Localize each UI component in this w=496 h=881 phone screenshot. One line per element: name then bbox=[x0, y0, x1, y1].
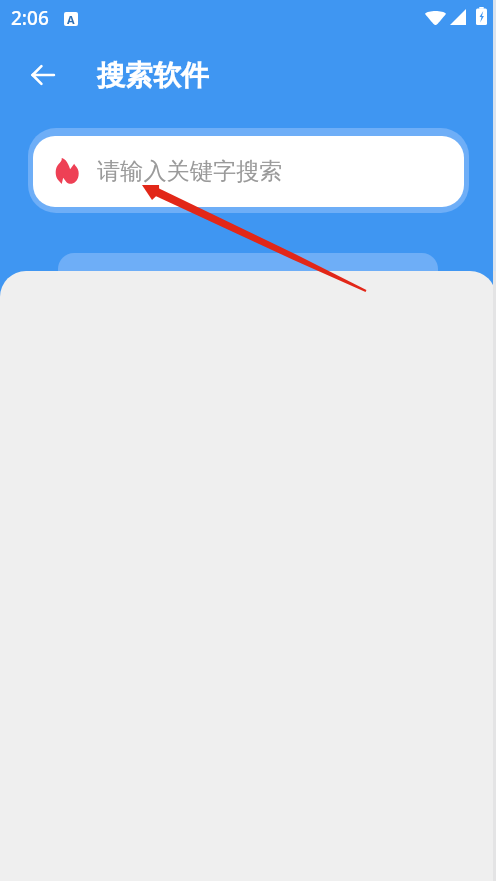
staticText: A bbox=[67, 12, 75, 26]
staticText: 搜索软件 bbox=[97, 58, 209, 93]
button[interactable]: 请输入关键字搜索 bbox=[33, 136, 464, 207]
staticText: 请输入关键字搜索 bbox=[97, 157, 283, 186]
button[interactable]: Back bbox=[22, 54, 64, 96]
staticText: 2:06 bbox=[11, 5, 49, 31]
